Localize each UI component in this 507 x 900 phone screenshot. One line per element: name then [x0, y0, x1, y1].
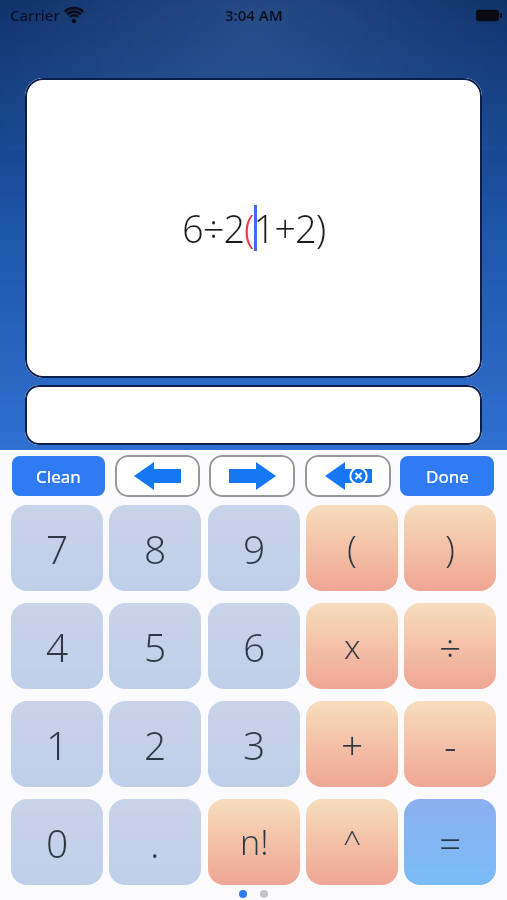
staticText: 2	[144, 718, 167, 771]
button[interactable]: .	[109, 799, 201, 885]
staticText: 1	[46, 718, 69, 771]
button[interactable]: +	[306, 701, 398, 787]
button[interactable]: n!	[208, 799, 300, 885]
button[interactable]: 7	[11, 505, 103, 591]
staticText: Carrier	[10, 5, 60, 25]
button[interactable]: 2	[109, 701, 201, 787]
staticText: 4	[46, 620, 69, 673]
staticText: =	[439, 816, 462, 869]
staticText: -	[444, 718, 457, 771]
button[interactable]: 6	[208, 603, 300, 689]
staticText: (	[347, 524, 357, 573]
staticText: Done	[426, 465, 469, 488]
staticText: 8	[144, 522, 167, 575]
staticText: )	[445, 524, 455, 573]
staticText: 5	[144, 620, 167, 673]
staticText: 7	[46, 522, 69, 575]
staticText: ^	[343, 820, 362, 864]
button[interactable]: 0	[11, 799, 103, 885]
staticText: +	[341, 718, 364, 771]
button[interactable]	[115, 455, 200, 497]
staticText: 3:04 AM	[225, 5, 283, 25]
button[interactable]: Clean	[12, 456, 105, 496]
button[interactable]: )	[404, 505, 496, 591]
staticText: ÷	[439, 620, 462, 673]
button[interactable]	[209, 455, 295, 497]
staticText: Clean	[36, 465, 81, 488]
staticText: n!	[240, 819, 269, 865]
button[interactable]: 6÷2(1+2)	[25, 78, 482, 378]
button[interactable]: x	[306, 603, 398, 689]
button[interactable]: 8	[109, 505, 201, 591]
button[interactable]: 4	[11, 603, 103, 689]
staticText: x	[344, 624, 361, 669]
staticText: 6	[243, 620, 266, 673]
button[interactable]: =	[404, 799, 496, 885]
button[interactable]: ^	[306, 799, 398, 885]
button[interactable]	[305, 455, 391, 497]
button[interactable]: 5	[109, 603, 201, 689]
button[interactable]: Done	[400, 456, 494, 496]
button[interactable]: -	[404, 701, 496, 787]
button[interactable]: 3	[208, 701, 300, 787]
staticText: 9	[243, 522, 266, 575]
button[interactable]	[25, 385, 482, 445]
staticText: 3	[243, 718, 266, 771]
button[interactable]: ÷	[404, 603, 496, 689]
button[interactable]: 9	[208, 505, 300, 591]
button[interactable]: (	[306, 505, 398, 591]
staticText: 0	[46, 816, 69, 869]
button[interactable]: 1	[11, 701, 103, 787]
staticText: 6÷2(1+2)	[182, 202, 326, 254]
staticText: .	[150, 816, 160, 869]
